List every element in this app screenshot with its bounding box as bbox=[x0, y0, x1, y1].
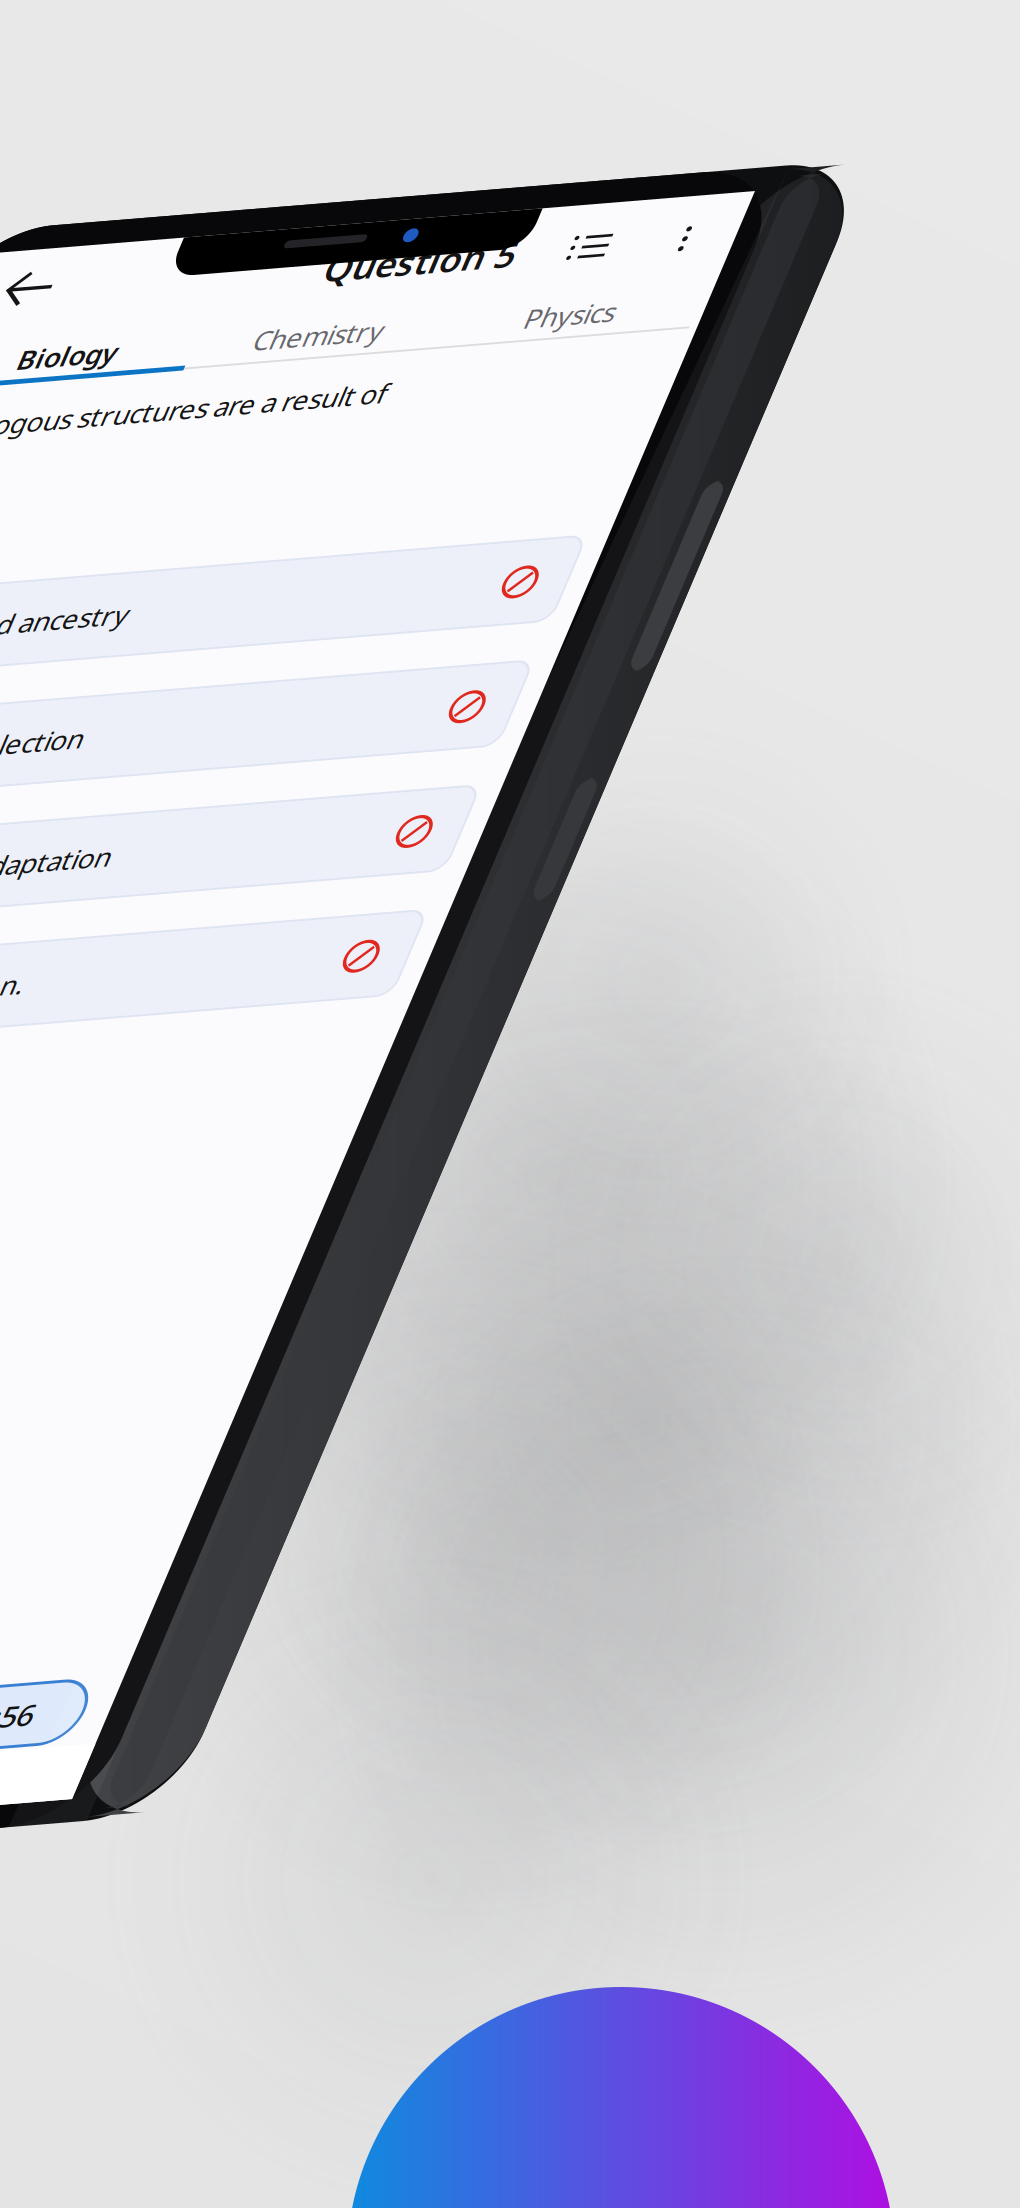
staticText: Divergent evolution. bbox=[52, 375, 178, 392]
staticText: 43:56 bbox=[302, 756, 338, 776]
button[interactable]: C bbox=[12, 299, 364, 342]
button[interactable]: D bbox=[12, 362, 364, 405]
staticText: B bbox=[32, 249, 41, 266]
button[interactable]: B bbox=[12, 236, 364, 279]
button[interactable]: A bbox=[12, 173, 364, 216]
staticText: D bbox=[32, 375, 42, 392]
